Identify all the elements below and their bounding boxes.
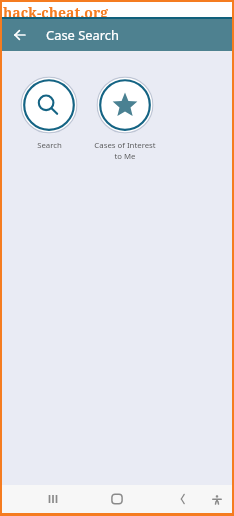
button[interactable]: Back (159, 485, 205, 513)
button[interactable]: Cases of Interest to Me (87, 75, 163, 161)
button[interactable]: Search (11, 75, 87, 151)
staticText: hack-cheat.org (3, 3, 109, 18)
staticText: Case Search (46, 26, 119, 44)
staticText: Search (37, 140, 62, 151)
button[interactable]: Home (94, 485, 140, 513)
button[interactable]: Recents (30, 485, 76, 513)
button[interactable]: Back (4, 19, 36, 51)
button[interactable]: Accessibility (202, 485, 232, 513)
staticText: Cases of Interest to Me (94, 140, 156, 161)
